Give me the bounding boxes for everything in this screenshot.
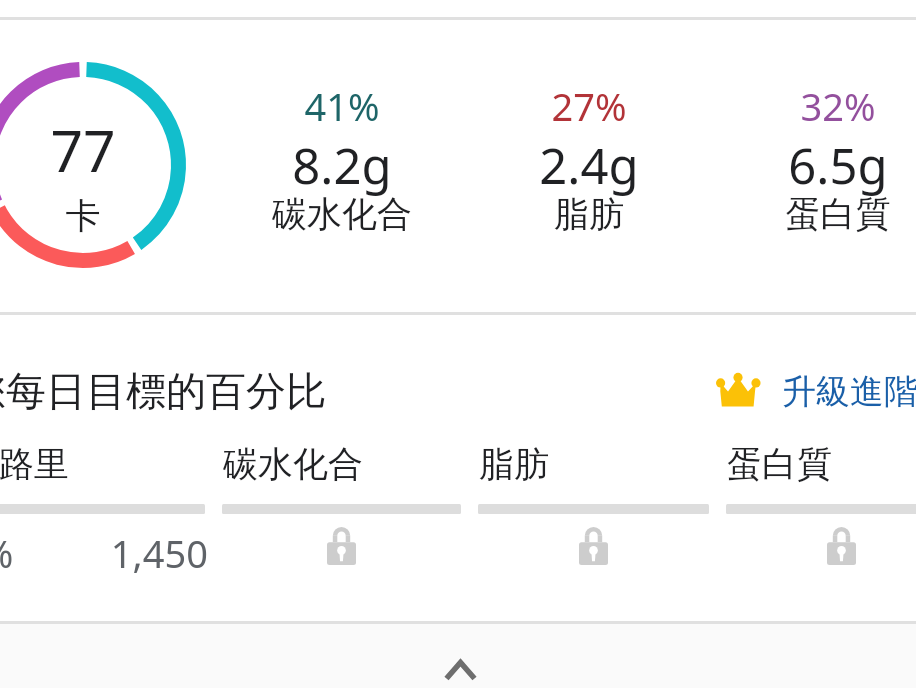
staticText: 卡 bbox=[0, 194, 186, 238]
staticText: 1,450 bbox=[0, 527, 208, 579]
staticText: 蛋白質 bbox=[714, 192, 916, 236]
staticText: 蛋白質 bbox=[727, 442, 832, 486]
staticText: 脂肪 bbox=[479, 442, 549, 486]
button[interactable]: 卡路里 bbox=[0, 430, 205, 595]
staticText: 27% bbox=[465, 80, 713, 132]
staticText: 碳水化合 bbox=[218, 192, 466, 236]
button[interactable]: 32% bbox=[714, 40, 916, 280]
button[interactable]: 脂肪 bbox=[478, 430, 709, 595]
button[interactable]: 碳水化合 bbox=[222, 430, 461, 595]
button[interactable]: Collapse bbox=[0, 624, 916, 688]
button[interactable]: 蛋白質 bbox=[726, 430, 916, 595]
staticText: 2.4g bbox=[465, 132, 713, 199]
staticText: 77 bbox=[0, 111, 186, 189]
button[interactable]: 27% bbox=[465, 40, 713, 280]
staticText: 0% bbox=[0, 527, 14, 579]
button[interactable]: 41% bbox=[218, 40, 466, 280]
staticText: 41% bbox=[218, 80, 466, 132]
staticText: 碳水化合 bbox=[223, 442, 363, 486]
staticText: 您每日目標的百分比 bbox=[0, 366, 326, 416]
button[interactable]: Go premium bbox=[715, 367, 916, 413]
staticText: 6.5g bbox=[714, 132, 916, 199]
staticText: 脂肪 bbox=[465, 192, 713, 236]
staticText: 卡路里 bbox=[0, 442, 69, 486]
staticText: 8.2g bbox=[218, 132, 466, 199]
other: Go premium bbox=[715, 373, 761, 407]
button[interactable]: 77 bbox=[0, 62, 186, 268]
staticText: 升級進階 bbox=[782, 370, 916, 413]
staticText: 32% bbox=[714, 80, 916, 132]
